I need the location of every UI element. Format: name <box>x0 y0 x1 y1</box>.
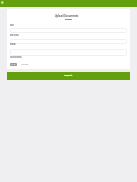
button[interactable]: Open navigation menu <box>0 0 6 6</box>
button[interactable] <box>10 39 127 44</box>
staticText: Name <box>10 24 14 26</box>
button[interactable]: Choose File <box>10 63 17 66</box>
staticText: Email Address <box>10 35 19 37</box>
staticText: Message <box>10 44 16 46</box>
button[interactable] <box>10 28 127 33</box>
staticText: No file chosen <box>21 64 29 65</box>
staticText: Email Address <box>10 34 19 36</box>
button[interactable]: Submit <box>7 72 130 80</box>
staticText: Upload documents <box>10 57 22 59</box>
button[interactable] <box>10 49 127 56</box>
staticText: Message <box>10 43 16 45</box>
staticText: Submit <box>64 74 73 77</box>
staticText: Choose File <box>10 64 17 66</box>
staticText: Upload documents <box>10 56 22 58</box>
staticText: Upload Documents <box>5 14 128 17</box>
staticText: Name <box>10 25 14 27</box>
